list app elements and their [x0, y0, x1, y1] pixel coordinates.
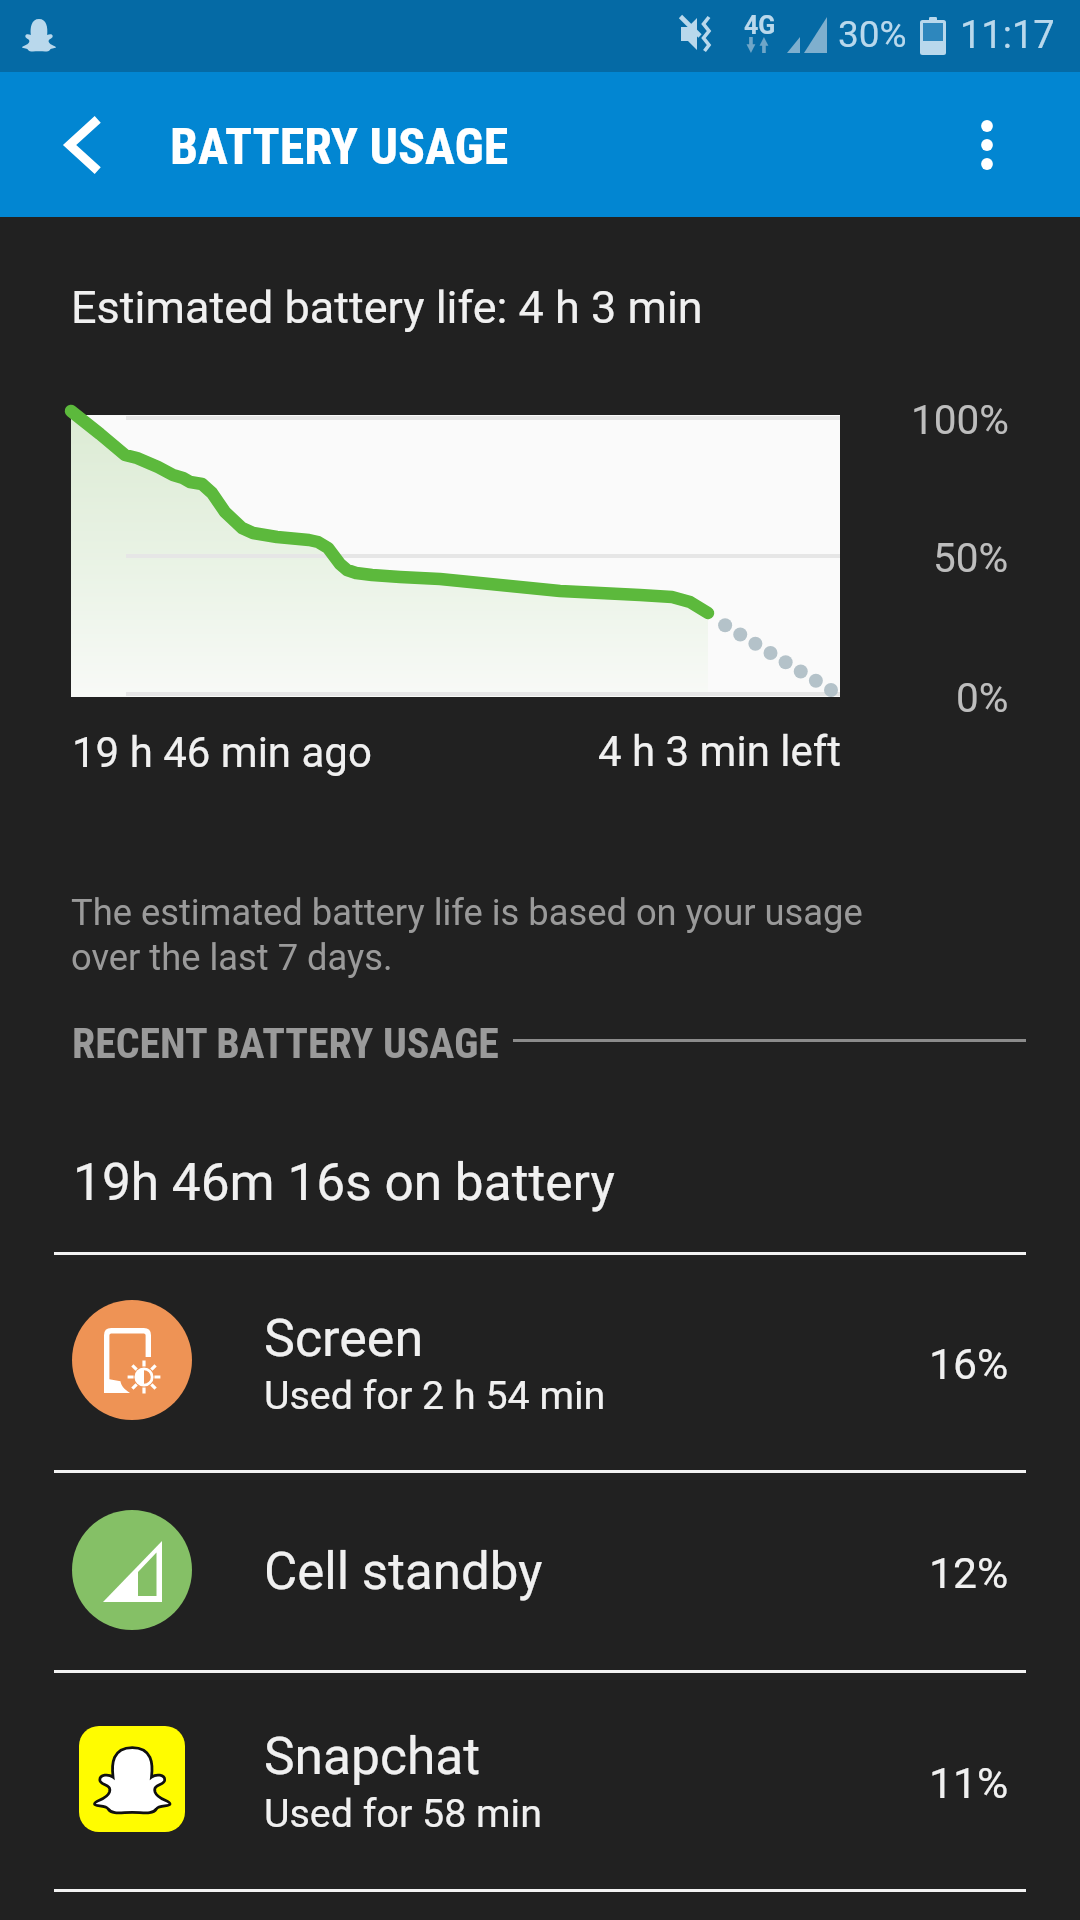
staticText: 12%: [929, 1548, 1009, 1598]
staticText: Snapchat: [264, 1726, 481, 1786]
button[interactable]: Cell standby: [0, 1470, 1080, 1670]
staticText: 4 h 3 min left: [598, 727, 842, 776]
staticText: BATTERY USAGE: [170, 118, 509, 177]
staticText: Used for 58 min: [264, 1790, 542, 1836]
button[interactable]: Snapchat: [0, 1670, 1080, 1889]
staticText: 19 h 46 min ago: [72, 728, 372, 777]
staticText: 30%: [838, 13, 907, 56]
staticText: 0%: [956, 674, 1009, 721]
staticText: 11:17: [960, 13, 1055, 58]
button[interactable]: Screen: [0, 1252, 1080, 1470]
staticText: 4G: [744, 11, 776, 40]
button[interactable]: Navigate up: [18, 72, 146, 217]
button[interactable]: More options: [950, 72, 1080, 217]
staticText: RECENT BATTERY USAGE: [72, 1019, 499, 1068]
staticText: 50%: [933, 534, 1009, 581]
staticText: The estimated battery life is based on y…: [71, 891, 863, 979]
staticText: 16%: [929, 1339, 1009, 1389]
staticText: Screen: [264, 1308, 424, 1369]
staticText: Cell standby: [264, 1542, 543, 1602]
staticText: Estimated battery life: 4 h 3 min: [71, 281, 703, 334]
staticText: 100%: [911, 396, 1009, 443]
staticText: Used for 2 h 54 min: [264, 1372, 606, 1418]
staticText: 11%: [929, 1758, 1009, 1808]
staticText: 19h 46m 16s on battery: [73, 1152, 615, 1212]
